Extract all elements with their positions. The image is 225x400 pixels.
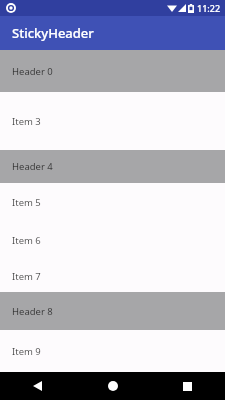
button[interactable]: Header 8 — [0, 292, 225, 330]
button[interactable]: Home — [75, 372, 150, 400]
staticText: Header 8 — [12, 305, 53, 318]
button[interactable]: Item 5 — [0, 183, 225, 221]
staticText: Item 7 — [12, 270, 41, 283]
staticText: Header 4 — [12, 160, 53, 173]
button[interactable]: Item 7 — [0, 260, 225, 292]
button[interactable]: Header 0 — [0, 50, 225, 92]
staticText: StickyHeader — [12, 24, 94, 42]
button[interactable]: Header 4 — [0, 150, 225, 183]
button[interactable]: Item 9 — [0, 330, 225, 372]
staticText: Item 9 — [12, 345, 41, 358]
staticText: Item 6 — [12, 234, 41, 247]
button[interactable]: Back — [0, 372, 75, 400]
staticText: 11:22 — [197, 2, 221, 14]
button[interactable]: Recent apps — [150, 372, 225, 400]
button[interactable]: Item 3 — [0, 92, 225, 150]
button[interactable]: Item 6 — [0, 221, 225, 260]
staticText: Header 0 — [12, 65, 53, 78]
staticText: Item 5 — [12, 196, 41, 209]
staticText: Item 3 — [12, 115, 41, 128]
